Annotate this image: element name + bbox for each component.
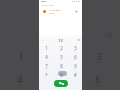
staticText: 3	[74, 45, 77, 51]
staticText: WXYZ	[73, 68, 77, 70]
button[interactable]: Call contact	[74, 9, 79, 14]
button[interactable]: 9	[68, 60, 82, 69]
staticText: 9	[74, 63, 77, 69]
staticText: 1	[45, 45, 48, 51]
staticText: +	[61, 77, 62, 79]
button[interactable]: Backspace	[76, 38, 80, 42]
staticText: ABC	[60, 50, 63, 52]
staticText: 8	[60, 63, 63, 69]
button[interactable]: Add contact	[41, 38, 45, 42]
staticText: JKL	[60, 59, 62, 61]
button[interactable]: Call	[54, 80, 68, 87]
button[interactable]: +1 234-5678	[39, 8, 82, 14]
staticText: 2	[60, 45, 63, 51]
staticText: 1	[18, 50, 24, 63]
staticText: DEF	[74, 50, 77, 52]
staticText: *	[45, 72, 48, 78]
staticText: 12	[58, 38, 63, 44]
staticText: TUV	[60, 68, 63, 70]
staticText: 5	[60, 54, 63, 60]
staticText: Recent calls	[41, 3, 55, 6]
staticText: +1 234-5678	[49, 9, 61, 12]
staticText: PQRS	[45, 68, 49, 70]
staticText: Mobile	[49, 12, 55, 14]
staticText: 6	[95, 73, 101, 86]
staticText: MNO	[73, 59, 77, 61]
button[interactable]: 2	[54, 42, 68, 51]
staticText: 4	[45, 54, 48, 60]
button[interactable]: 3	[68, 42, 82, 51]
button[interactable]: 3	[88, 46, 110, 68]
staticText: 3	[96, 50, 102, 63]
staticText: #	[74, 72, 77, 78]
button[interactable]: *	[39, 69, 54, 78]
button[interactable]: 6	[87, 69, 109, 90]
button[interactable]: 1	[39, 42, 54, 51]
button[interactable]: 7	[39, 60, 54, 69]
button[interactable]: 0	[54, 69, 68, 78]
button[interactable]: 4	[39, 51, 54, 60]
staticText: 0	[60, 72, 63, 78]
staticText: 7	[45, 63, 48, 69]
button[interactable]: 6	[68, 51, 82, 60]
staticText: 4	[17, 73, 23, 86]
staticText: GHI	[45, 59, 48, 61]
button[interactable]: 8	[54, 60, 68, 69]
button[interactable]: 5	[54, 51, 68, 60]
button[interactable]: #	[68, 69, 82, 78]
staticText: 6	[74, 54, 77, 60]
